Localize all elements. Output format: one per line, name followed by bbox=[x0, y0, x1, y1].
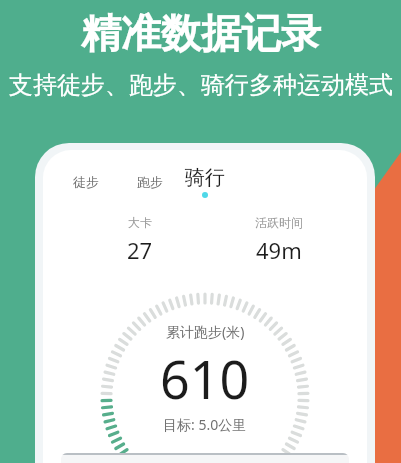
staticText: 49m bbox=[256, 235, 302, 265]
staticText: 骑行 bbox=[185, 165, 225, 190]
staticText: 徒步 bbox=[73, 174, 99, 190]
staticText: 跑步 bbox=[137, 174, 163, 190]
staticText: 目标: 5.0公里 bbox=[163, 415, 247, 434]
button[interactable]: 骑行 bbox=[181, 163, 229, 200]
button[interactable]: 徒步 bbox=[69, 170, 103, 194]
staticText: 支持徒步、跑步、骑行多种运动模式 bbox=[9, 70, 393, 100]
button[interactable]: Start bbox=[61, 453, 349, 463]
staticText: 精准数据记录 bbox=[81, 8, 321, 58]
staticText: 610 bbox=[160, 343, 250, 414]
staticText: 累计跑步(米) bbox=[166, 322, 245, 341]
staticText: 活跃时间 bbox=[255, 215, 303, 230]
staticText: 27 bbox=[127, 235, 153, 265]
button[interactable]: 跑步 bbox=[133, 170, 167, 194]
staticText: 大卡 bbox=[128, 215, 152, 230]
